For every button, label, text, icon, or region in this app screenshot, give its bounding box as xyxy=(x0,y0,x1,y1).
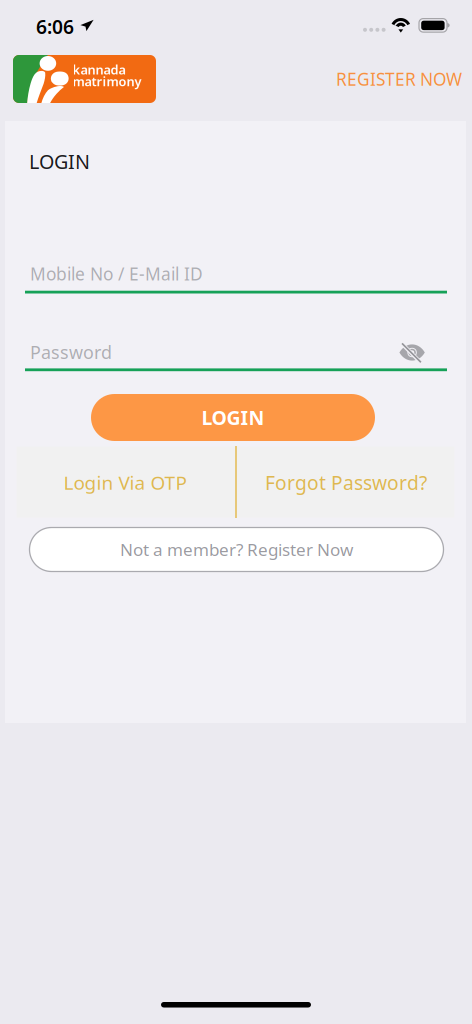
staticText: kannada xyxy=(72,61,125,78)
staticText: LOGIN xyxy=(201,404,264,431)
button[interactable]: REGISTER NOW xyxy=(329,62,469,96)
staticText: Not a member? Register Now xyxy=(120,538,353,561)
staticText: REGISTER NOW xyxy=(336,67,462,91)
staticText: 6:06 xyxy=(36,13,74,40)
button[interactable]: Kannada Matrimony xyxy=(13,55,156,103)
button[interactable]: Login Via OTP xyxy=(16,446,234,519)
staticText: LOGIN xyxy=(29,148,90,175)
staticText: Password xyxy=(30,340,112,364)
button[interactable]: Not a member? Register Now xyxy=(29,527,443,571)
button[interactable]: Show password xyxy=(390,337,434,371)
staticText: Forgot Password? xyxy=(265,469,427,496)
button[interactable]: Forgot Password? xyxy=(237,446,455,519)
staticText: Mobile No / E-Mail ID xyxy=(30,262,203,286)
staticText: Login Via OTP xyxy=(63,470,186,495)
button[interactable]: LOGIN xyxy=(91,394,375,441)
staticText: matrimony xyxy=(72,72,141,90)
